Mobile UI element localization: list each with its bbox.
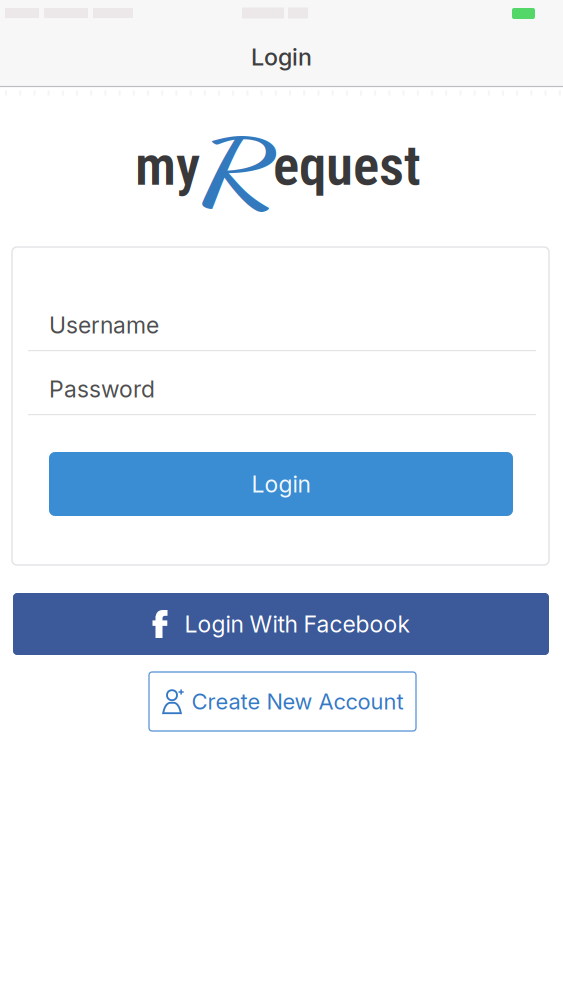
staticText: Create New Account bbox=[191, 688, 403, 715]
button[interactable]: Create New Account bbox=[149, 672, 416, 731]
button[interactable]: Password bbox=[12, 352, 549, 415]
staticText: my bbox=[135, 134, 200, 198]
staticText: Username bbox=[49, 311, 159, 339]
staticText: Login With Facebook bbox=[184, 610, 409, 638]
staticText: Login bbox=[251, 470, 310, 498]
button[interactable]: Username bbox=[12, 288, 549, 351]
staticText: Login bbox=[251, 43, 312, 71]
button[interactable]: Login With Facebook bbox=[13, 593, 549, 655]
button[interactable]: Login bbox=[49, 452, 513, 516]
staticText: Password bbox=[49, 375, 155, 403]
staticText: equest bbox=[273, 134, 421, 198]
staticText: R bbox=[209, 118, 265, 226]
